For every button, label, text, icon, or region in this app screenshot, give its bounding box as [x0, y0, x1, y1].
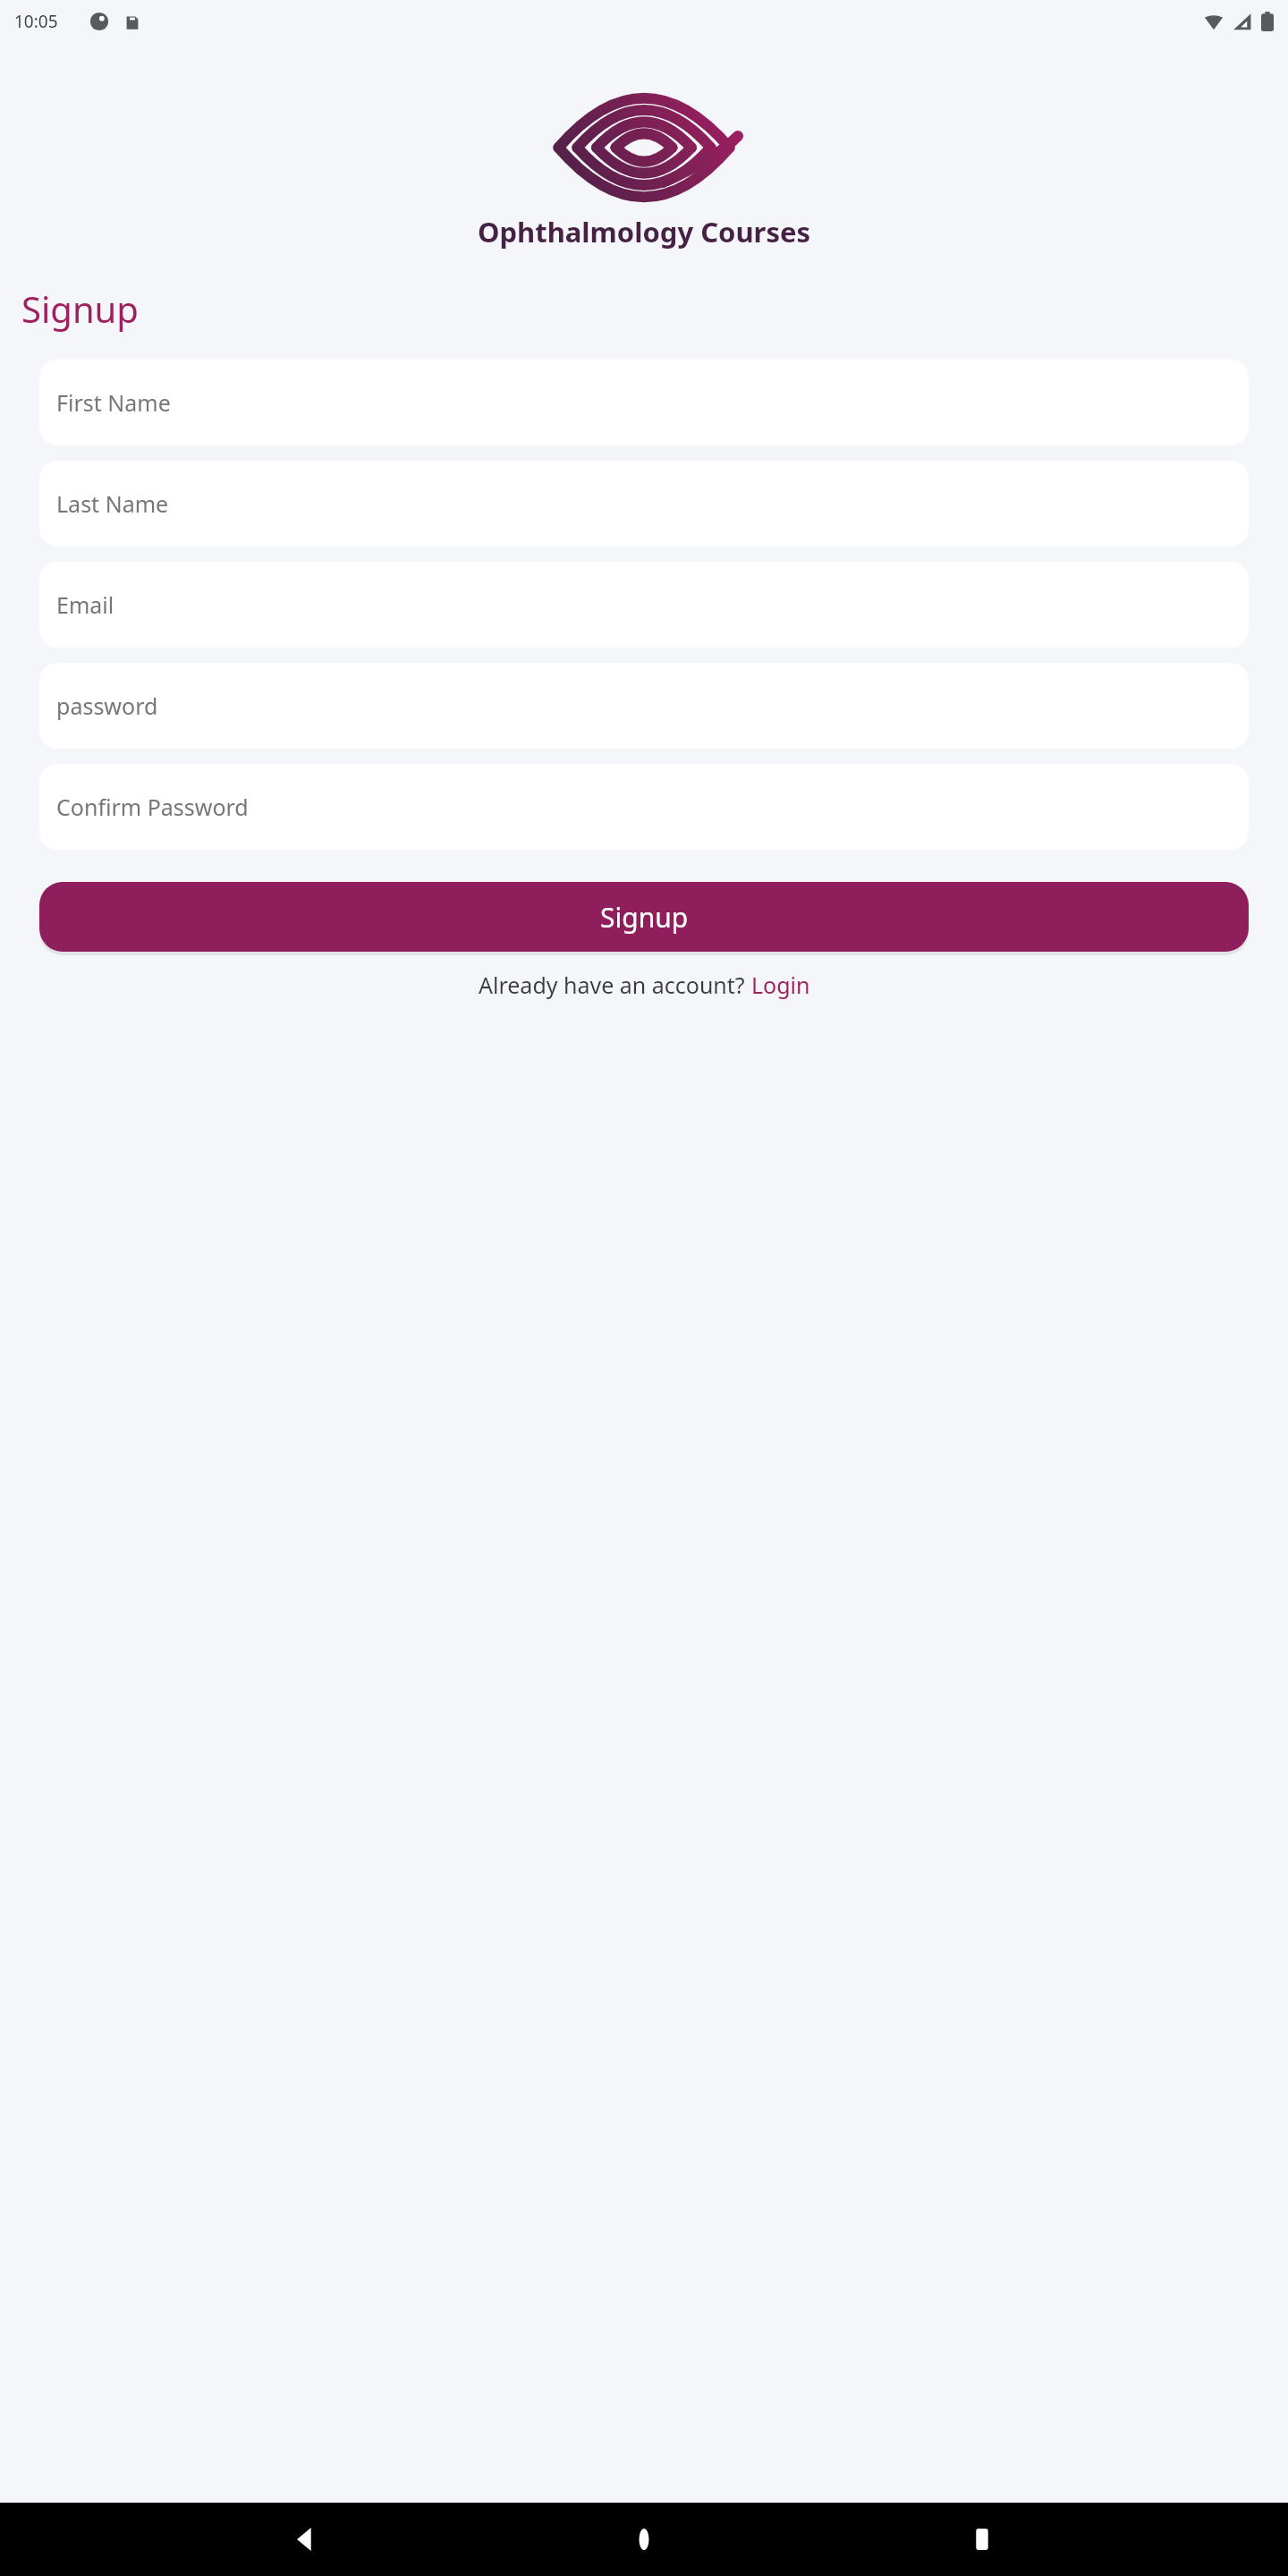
staticText: password [56, 691, 158, 721]
staticText: First Name [56, 387, 171, 418]
button[interactable]: First Name [39, 360, 1249, 445]
button[interactable]: Confirm Password [39, 764, 1249, 850]
staticText: Signup [600, 899, 689, 936]
button[interactable]: Back [275, 2508, 338, 2571]
staticText: Last Name [56, 488, 169, 519]
staticText: Ophthalmology Courses [0, 213, 1288, 250]
staticText: Signup [21, 284, 139, 333]
button[interactable]: Login [751, 970, 810, 1000]
staticText: Already have an account? [479, 970, 751, 1000]
button[interactable]: Signup [39, 882, 1249, 952]
button[interactable]: Recent apps [951, 2508, 1013, 2571]
staticText: Email [56, 589, 114, 620]
button[interactable]: password [39, 663, 1249, 749]
staticText: 10:05 [14, 10, 58, 33]
button[interactable]: Email [39, 562, 1249, 648]
staticText: Confirm Password [56, 792, 249, 822]
button[interactable]: Home [613, 2508, 675, 2571]
button[interactable]: Last Name [39, 461, 1249, 547]
staticText: Login [751, 970, 810, 1000]
